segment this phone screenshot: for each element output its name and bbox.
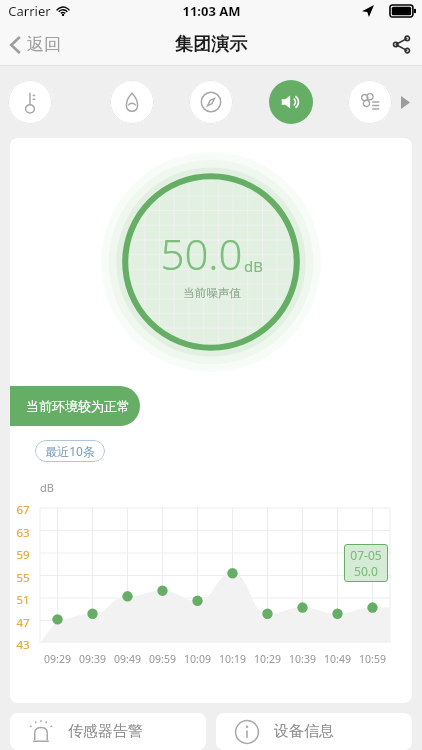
staticText: 09:49 xyxy=(114,652,141,666)
staticText: 设备信息 xyxy=(274,722,334,741)
staticText: 当前噪声值 xyxy=(183,286,241,300)
staticText: 传感器告警 xyxy=(68,722,143,741)
staticText: 10:29 xyxy=(254,652,281,666)
button[interactable]: 最近10条 xyxy=(35,440,105,462)
staticText: 最近10条 xyxy=(45,443,95,459)
staticText: 10:09 xyxy=(184,652,211,666)
button[interactable]: 当前环境较为正常 xyxy=(10,386,140,426)
button[interactable]: Previous xyxy=(0,78,33,127)
staticText: dB xyxy=(244,256,263,276)
button[interactable]: Noise xyxy=(269,80,313,124)
staticText: 50.0 xyxy=(354,563,378,579)
staticText: 10:59 xyxy=(359,652,386,666)
staticText: 55 xyxy=(16,570,30,582)
button[interactable]: Temperature xyxy=(8,80,52,124)
button[interactable]: Pressure xyxy=(189,80,233,124)
button[interactable]: Particles xyxy=(348,80,392,124)
staticText: 10:49 xyxy=(324,652,351,666)
staticText: 67 xyxy=(16,502,30,514)
staticText: 11:03 AM xyxy=(182,2,241,20)
staticText: 47 xyxy=(16,615,30,627)
staticText: 51 xyxy=(16,592,30,604)
staticText: 当前环境较为正常 xyxy=(26,398,130,414)
staticText: dB xyxy=(40,480,54,495)
staticText: 50.0 xyxy=(160,225,243,282)
button[interactable]: 返回 xyxy=(0,28,71,61)
staticText: 09:29 xyxy=(44,652,71,666)
staticText: 43 xyxy=(16,637,30,649)
button[interactable]: Share xyxy=(381,24,422,65)
button[interactable]: Humidity xyxy=(110,80,154,124)
button[interactable]: 设备信息 xyxy=(216,713,412,750)
staticText: 09:39 xyxy=(79,652,106,666)
staticText: 63 xyxy=(16,525,30,537)
button[interactable]: 传感器告警 xyxy=(10,713,206,750)
staticText: 10:39 xyxy=(289,652,316,666)
staticText: 集团演示 xyxy=(175,33,247,56)
staticText: 返回 xyxy=(27,34,61,55)
staticText: 09:59 xyxy=(149,652,176,666)
staticText: Carrier xyxy=(8,2,51,20)
button[interactable]: Next xyxy=(389,78,422,127)
staticText: 10:19 xyxy=(219,652,246,666)
staticText: 07-05 xyxy=(350,547,382,563)
staticText: 59 xyxy=(16,547,30,559)
